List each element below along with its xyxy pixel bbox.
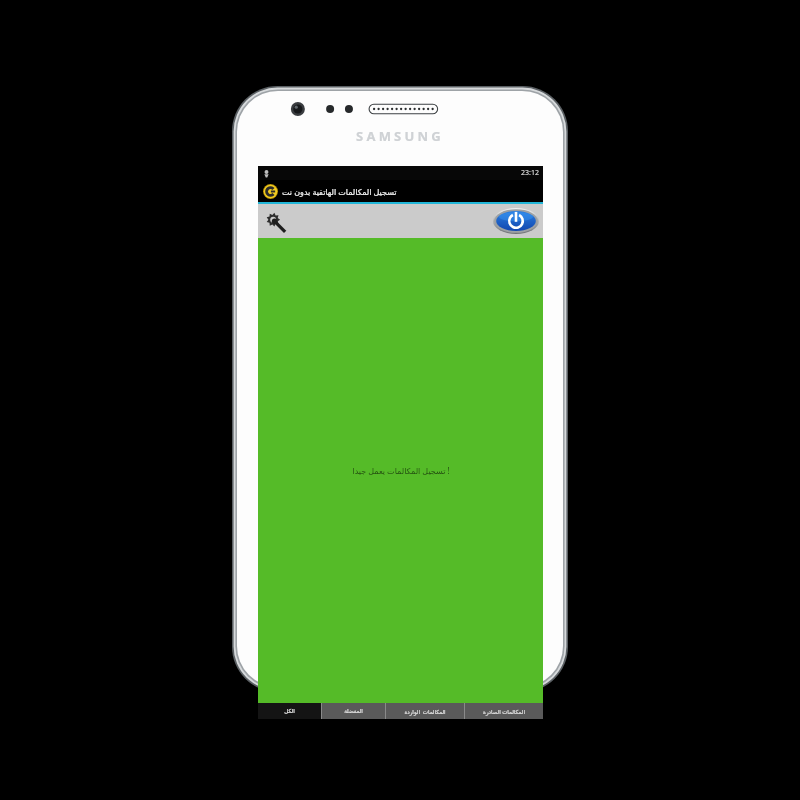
staticText: المكالمات الواردة: [404, 708, 446, 715]
staticText: المفضلة: [344, 708, 363, 714]
button[interactable]: Settings: [261, 207, 289, 235]
staticText: تسجيل المكالمات الهاتفية بدون نت: [282, 186, 397, 197]
staticText: المكالمات الصادرة: [483, 708, 525, 715]
button[interactable]: Power: [493, 208, 539, 234]
staticText: الكل: [284, 708, 295, 714]
button[interactable]: المكالمات الواردة: [386, 703, 464, 719]
button[interactable]: المكالمات الصادرة: [465, 703, 543, 719]
button[interactable]: تسجيل المكالمات الهاتفية بدون نت: [258, 180, 543, 202]
staticText: SAMSUNG: [356, 127, 444, 145]
button[interactable]: المفضلة: [322, 703, 385, 719]
staticText: تسجيل المكالمات يعمل جيدا !: [352, 465, 450, 476]
button[interactable]: الكل: [258, 703, 321, 719]
staticText: 23:12: [521, 168, 539, 178]
